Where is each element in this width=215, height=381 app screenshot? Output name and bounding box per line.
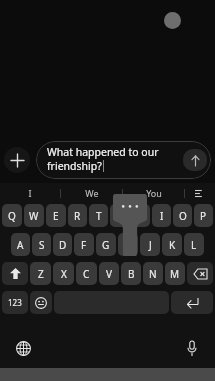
button[interactable]: 123 <box>2 291 28 314</box>
staticText: O <box>179 209 187 223</box>
staticText: E <box>53 209 59 223</box>
button[interactable]: Q <box>2 204 22 227</box>
button[interactable]: Change language <box>12 337 34 359</box>
button[interactable]: Send <box>183 149 207 171</box>
button[interactable]: X <box>53 262 74 285</box>
button[interactable]: You <box>123 183 184 203</box>
button[interactable]: K <box>162 233 182 256</box>
button[interactable]: E <box>46 204 66 227</box>
button[interactable]: Profile <box>164 12 181 29</box>
button[interactable]: B <box>121 262 141 285</box>
staticText: Z <box>38 267 44 281</box>
button[interactable]: L <box>184 233 204 256</box>
button[interactable]: Voice input <box>181 337 203 359</box>
button[interactable]: Text editing options <box>185 183 215 203</box>
staticText: You <box>146 187 162 199</box>
button[interactable]: N <box>143 262 163 285</box>
staticText: J <box>149 238 152 252</box>
staticText: friendship? <box>47 159 102 173</box>
staticText: C <box>83 267 90 281</box>
button[interactable]: I <box>152 204 171 227</box>
button[interactable]: Emoji <box>30 291 52 314</box>
staticText: M <box>170 267 180 281</box>
button[interactable]: Y <box>110 204 129 227</box>
button[interactable]: G <box>96 233 116 256</box>
staticText: We <box>85 187 99 199</box>
button[interactable]: T <box>89 204 108 227</box>
button[interactable]: R <box>68 204 87 227</box>
staticText: I <box>160 209 164 223</box>
staticText: T <box>96 209 102 223</box>
staticText: F <box>81 238 87 252</box>
staticText: I <box>28 187 32 199</box>
staticText: 123 <box>8 297 22 308</box>
staticText: D <box>59 238 67 252</box>
staticText: R <box>74 209 81 223</box>
button[interactable]: J <box>140 233 160 256</box>
button[interactable]: Backspace <box>187 262 213 285</box>
staticText: V <box>106 267 112 281</box>
staticText: G <box>102 238 110 252</box>
button[interactable]: I <box>0 183 60 203</box>
button[interactable]: S <box>32 233 51 256</box>
staticText: B <box>128 267 135 281</box>
button[interactable]: Shift <box>2 262 28 285</box>
button[interactable]: W <box>24 204 44 227</box>
button[interactable]: V <box>99 262 119 285</box>
staticText: Q <box>8 209 16 223</box>
staticText: S <box>39 238 45 252</box>
button[interactable]: F <box>74 233 94 256</box>
staticText: A <box>17 238 24 252</box>
button[interactable]: What happened to our <box>36 141 211 179</box>
button[interactable]: C <box>76 262 97 285</box>
staticText: K <box>169 238 176 252</box>
button[interactable]: A <box>11 233 30 256</box>
button[interactable]: We <box>61 183 122 203</box>
button[interactable]: Enter <box>171 291 213 314</box>
button[interactable]: P <box>194 204 213 227</box>
staticText: L <box>191 238 197 252</box>
staticText: N <box>149 267 157 281</box>
button[interactable]: U <box>131 204 150 227</box>
staticText: U <box>137 209 145 223</box>
button[interactable]: Add attachment <box>4 147 30 173</box>
staticText: P <box>200 209 207 223</box>
button[interactable]: O <box>173 204 192 227</box>
staticText: X <box>61 267 67 281</box>
staticText: What happened to our <box>47 145 159 159</box>
button[interactable]: Z <box>30 262 51 285</box>
button[interactable]: D <box>53 233 72 256</box>
staticText: W <box>29 209 39 223</box>
button[interactable]: H <box>118 233 138 256</box>
button[interactable]: M <box>165 262 185 285</box>
